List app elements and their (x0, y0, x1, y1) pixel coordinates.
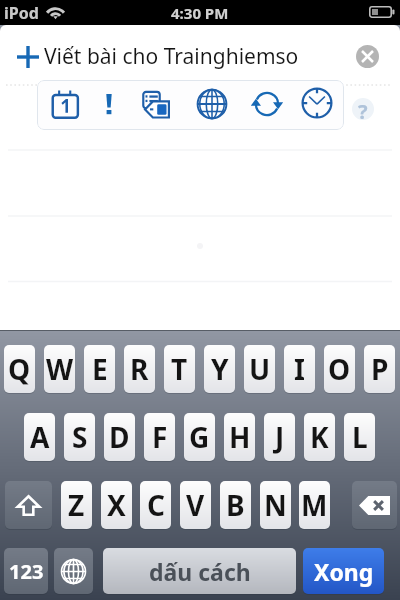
staticText: W (46, 350, 74, 388)
button[interactable]: Q (4, 345, 35, 393)
button[interactable]: Sync (252, 89, 282, 119)
staticText: V (186, 486, 205, 524)
button[interactable]: Schedule (50, 89, 80, 119)
staticText: Z (68, 486, 85, 524)
staticText: D (109, 418, 130, 456)
staticText: T (171, 350, 188, 388)
staticText: I (294, 350, 305, 388)
button[interactable]: L (344, 413, 375, 461)
staticText: S (72, 418, 88, 456)
button[interactable]: R (124, 345, 155, 393)
staticText: iPod (4, 2, 39, 24)
button[interactable]: A (24, 413, 55, 461)
button[interactable]: T (164, 345, 195, 393)
button[interactable]: Time (302, 88, 332, 118)
staticText: G (189, 418, 210, 456)
staticText: 123 (9, 558, 44, 585)
staticText: 4:30 PM (171, 3, 229, 23)
button[interactable]: G (184, 413, 215, 461)
button[interactable]: P (364, 345, 395, 393)
staticText: dấu cách (149, 556, 251, 587)
button[interactable]: E (84, 345, 115, 393)
button[interactable]: U (244, 345, 275, 393)
staticText: Xong (314, 556, 374, 587)
staticText: N (264, 486, 287, 524)
staticText: M (301, 486, 328, 524)
button[interactable]: D (104, 413, 135, 461)
button[interactable]: Close (356, 45, 379, 68)
button[interactable]: W (44, 345, 75, 393)
button[interactable]: C (140, 481, 171, 529)
button[interactable]: Z (61, 481, 92, 529)
button[interactable]: 123 (4, 548, 48, 594)
staticText: Viết bài cho Trainghiemso (44, 42, 299, 71)
staticText: P (371, 350, 389, 388)
button[interactable]: M (299, 481, 330, 529)
staticText: O (328, 350, 351, 388)
staticText: U (249, 350, 271, 388)
staticText: K (310, 418, 329, 456)
button[interactable]: F (144, 413, 175, 461)
staticText: J (275, 418, 285, 456)
button[interactable]: Priority (94, 89, 124, 119)
button[interactable]: Help (352, 98, 374, 120)
button[interactable]: O (324, 345, 355, 393)
staticText: E (92, 350, 108, 388)
staticText: ? (358, 98, 368, 120)
button[interactable]: K (304, 413, 335, 461)
button[interactable]: V (180, 481, 211, 529)
button[interactable]: X (101, 481, 132, 529)
button[interactable]: Viết bài cho Trainghiemso (0, 25, 400, 88)
button[interactable]: Tags (141, 89, 171, 119)
button[interactable]: Backspace (352, 481, 397, 529)
button[interactable]: dấu cách (103, 548, 296, 594)
button[interactable]: N (260, 481, 291, 529)
staticText: A (30, 418, 50, 456)
button[interactable]: H (224, 413, 255, 461)
button[interactable]: Y (204, 345, 235, 393)
button[interactable]: Shift (5, 481, 52, 529)
staticText: B (226, 486, 245, 524)
staticText: Q (8, 350, 31, 388)
staticText: R (130, 350, 149, 388)
button[interactable]: Xong (303, 548, 384, 594)
staticText: L (352, 418, 368, 456)
button[interactable]: J (264, 413, 295, 461)
staticText: F (152, 418, 168, 456)
button[interactable]: B (220, 481, 251, 529)
button[interactable]: I (284, 345, 315, 393)
staticText: H (229, 418, 251, 456)
staticText: C (147, 486, 165, 524)
staticText: X (107, 486, 126, 524)
button[interactable]: Change language (54, 548, 93, 594)
staticText: Y (211, 350, 229, 388)
button[interactable]: Web (197, 89, 227, 119)
button[interactable]: S (64, 413, 95, 461)
